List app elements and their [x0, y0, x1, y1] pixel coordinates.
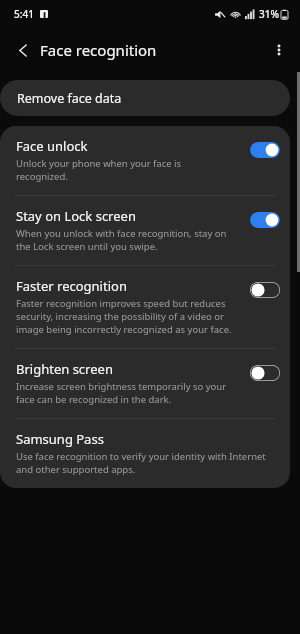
button[interactable]: On: [250, 212, 280, 228]
staticText: Remove face data: [17, 90, 122, 107]
staticText: When you unlock with face recognition, s…: [16, 227, 227, 253]
button[interactable]: Brighten screen: [0, 349, 290, 418]
button[interactable]: Faster recognition: [0, 266, 290, 348]
staticText: Stay on Lock screen: [16, 207, 136, 225]
button[interactable]: On: [250, 142, 280, 158]
staticText: Face unlock: [16, 137, 88, 155]
staticText: 5:41: [14, 7, 34, 21]
staticText: Increase screen brightness temporarily s…: [16, 380, 227, 406]
button[interactable]: Samsung Pass: [0, 419, 290, 488]
button[interactable]: Off: [250, 282, 280, 298]
button[interactable]: Stay on Lock screen: [0, 196, 290, 265]
staticText: Use face recognition to verify your iden…: [16, 450, 266, 476]
button[interactable]: Face unlock: [0, 126, 290, 195]
staticText: 31%: [259, 7, 279, 21]
staticText: Face recognition: [40, 40, 157, 60]
button[interactable]: Off: [250, 365, 280, 381]
staticText: Faster recognition improves speed but re…: [16, 297, 232, 336]
button[interactable]: More options: [262, 33, 296, 67]
staticText: Unlock your phone when your face is reco…: [16, 157, 182, 183]
button[interactable]: Back: [6, 33, 40, 67]
staticText: Brighten screen: [16, 360, 113, 378]
button[interactable]: Remove face data: [0, 80, 290, 116]
staticText: Faster recognition: [16, 277, 127, 295]
staticText: Samsung Pass: [16, 430, 104, 448]
